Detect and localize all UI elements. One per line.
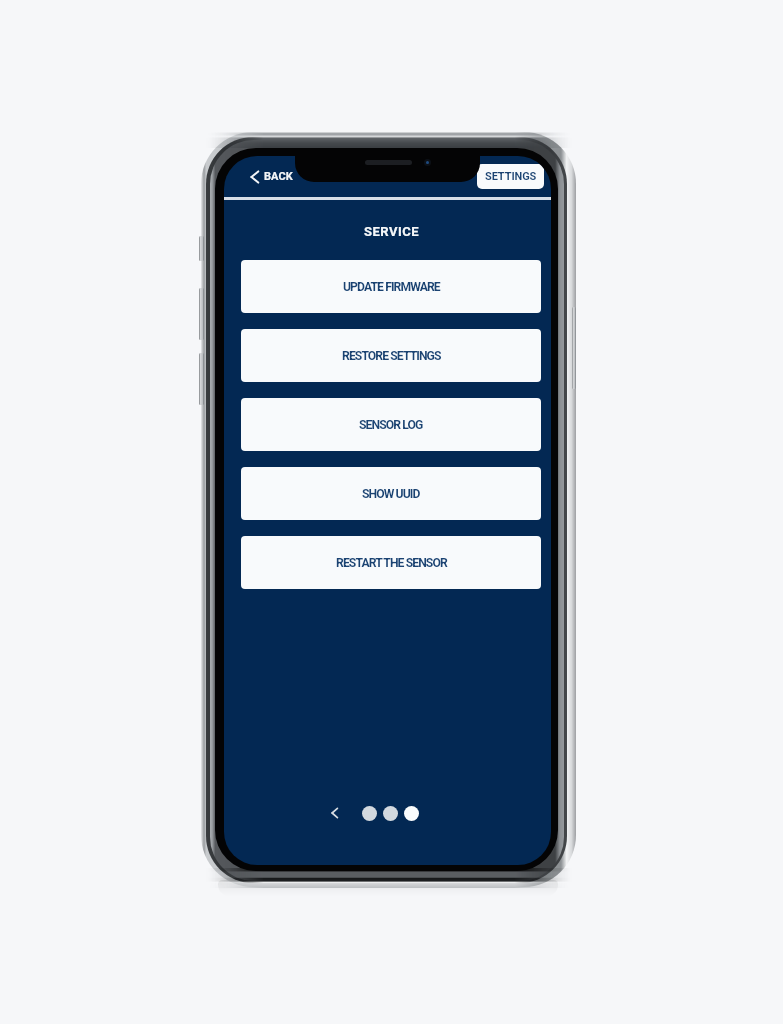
staticText: RESTART THE SENSOR <box>336 556 447 570</box>
button[interactable]: RESTORE SETTINGS <box>241 329 541 382</box>
staticText: RESTORE SETTINGS <box>342 349 441 363</box>
staticText: SERVICE <box>228 224 551 239</box>
button[interactable]: SHOW UUID <box>241 467 541 520</box>
button[interactable] <box>404 806 419 821</box>
staticText: SENSOR LOG <box>359 418 423 432</box>
button[interactable]: SETTINGS <box>477 164 544 189</box>
staticText: SHOW UUID <box>362 487 420 501</box>
staticText: BACK <box>264 170 293 183</box>
button[interactable]: SENSOR LOG <box>241 398 541 451</box>
staticText: SETTINGS <box>485 170 537 183</box>
button[interactable] <box>362 806 377 821</box>
button[interactable]: UPDATE FIRMWARE <box>241 260 541 313</box>
button[interactable] <box>383 806 398 821</box>
button[interactable]: BACK <box>246 165 297 188</box>
button[interactable]: RESTART THE SENSOR <box>241 536 541 589</box>
button[interactable]: Previous page <box>323 802 345 824</box>
staticText: UPDATE FIRMWARE <box>343 280 440 294</box>
